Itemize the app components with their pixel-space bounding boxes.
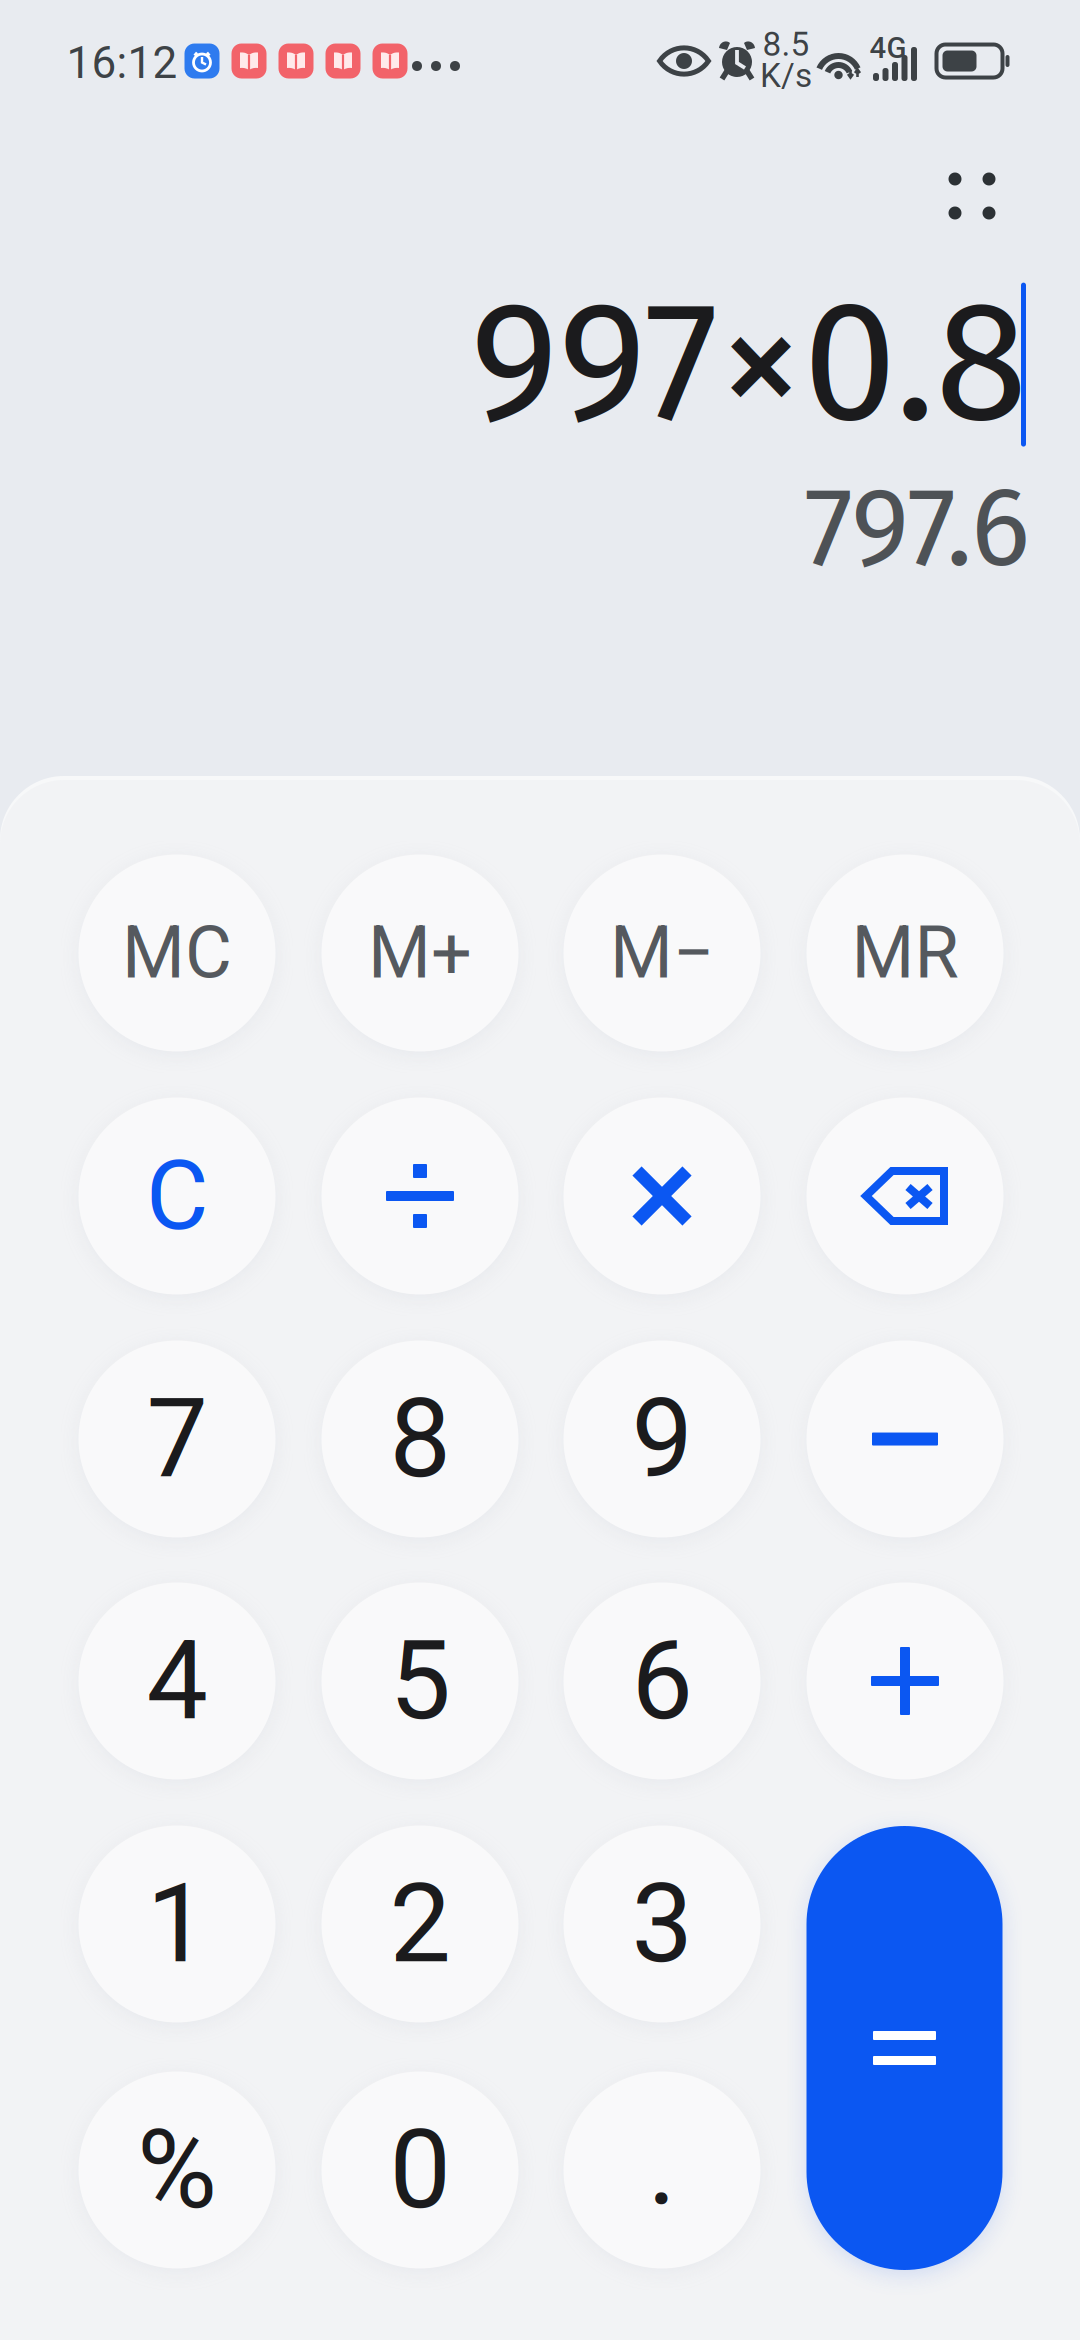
staticText: % — [137, 2106, 217, 2234]
staticText: 3 — [631, 1860, 692, 1988]
button[interactable]: Multiply — [563, 1097, 760, 1294]
staticText: 797.6 — [804, 462, 1030, 594]
button[interactable]: M− — [563, 854, 760, 1051]
staticText: 1 — [146, 1860, 207, 1988]
staticText: 9 — [631, 1375, 692, 1503]
staticText: 7 — [146, 1375, 207, 1503]
button[interactable]: Equals — [806, 1826, 1002, 2270]
staticText: 997×0.8 — [470, 262, 1028, 464]
button[interactable]: Divide — [321, 1097, 518, 1294]
button[interactable]: MR — [806, 854, 1003, 1051]
staticText: 5 — [389, 1617, 450, 1745]
button[interactable]: 5 — [321, 1582, 518, 1779]
button[interactable]: 0 — [321, 2071, 518, 2268]
button[interactable]: History — [912, 136, 1032, 256]
button[interactable]: Clear — [78, 1097, 275, 1294]
button[interactable]: Backspace — [806, 1097, 1003, 1294]
staticText: M− — [610, 911, 714, 995]
button[interactable]: 4 — [78, 1582, 275, 1779]
button[interactable]: % — [78, 2071, 275, 2268]
button[interactable]: . — [563, 2071, 760, 2268]
button[interactable]: 9 — [563, 1340, 760, 1537]
staticText: 16:12 — [66, 37, 177, 89]
staticText: M+ — [368, 911, 472, 995]
staticText: 6 — [631, 1617, 692, 1745]
button[interactable]: Minus — [806, 1340, 1003, 1537]
staticText: 8.5 — [762, 25, 809, 64]
button[interactable]: 3 — [563, 1825, 760, 2022]
button[interactable]: 8 — [321, 1340, 518, 1537]
staticText: 4G — [869, 31, 906, 65]
button[interactable]: 7 — [78, 1340, 275, 1537]
staticText: 2 — [389, 1860, 450, 1988]
button[interactable]: Plus — [806, 1582, 1003, 1779]
button[interactable]: M+ — [321, 854, 518, 1051]
staticText: 8 — [389, 1375, 450, 1503]
staticText: MR — [851, 911, 958, 995]
staticText: K/s — [760, 56, 812, 95]
staticText: 4 — [146, 1617, 207, 1745]
staticText: 0 — [389, 2106, 450, 2234]
button[interactable]: 2 — [321, 1825, 518, 2022]
button[interactable]: 1 — [78, 1825, 275, 2022]
button[interactable]: 6 — [563, 1582, 760, 1779]
button[interactable]: MC — [78, 854, 275, 1051]
staticText: . — [647, 2102, 676, 2230]
staticText: C — [146, 1140, 208, 1252]
staticText: MC — [122, 911, 232, 995]
